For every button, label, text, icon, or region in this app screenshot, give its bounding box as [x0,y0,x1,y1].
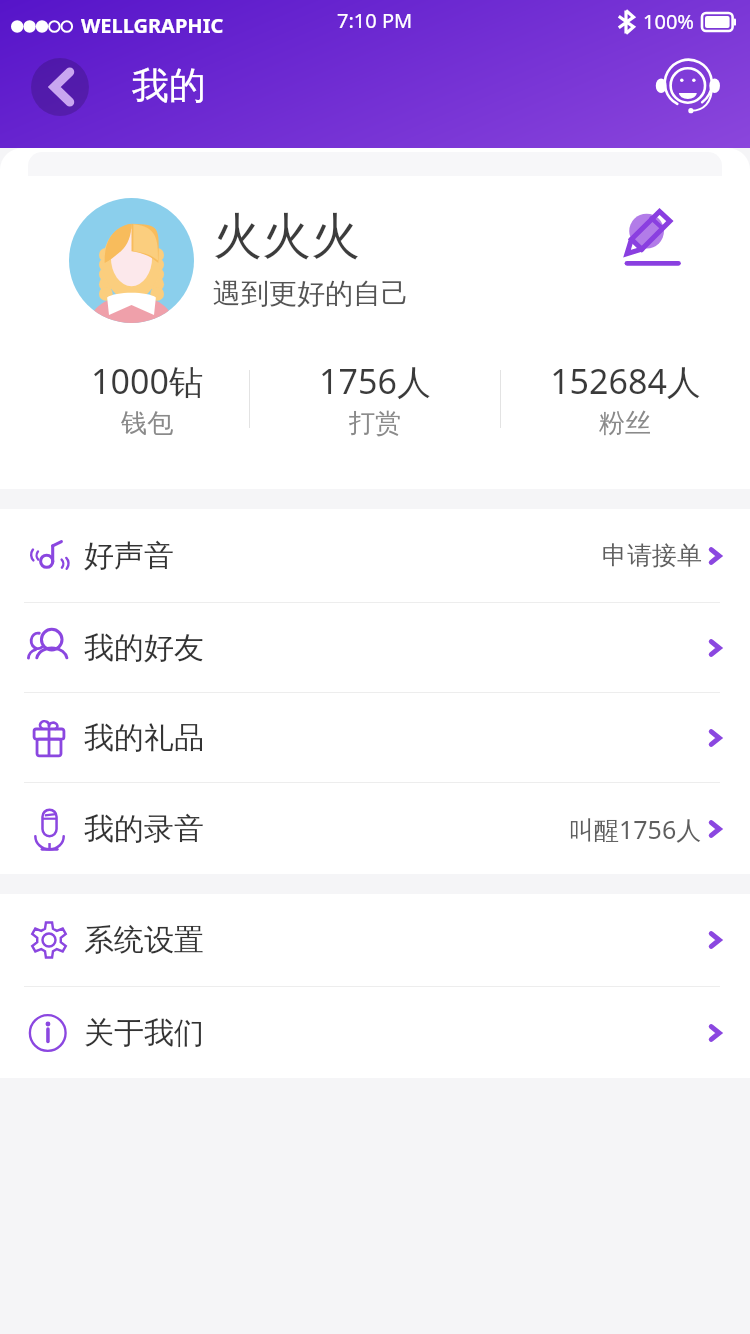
button[interactable]: Edit profile [617,200,691,274]
staticText: 打赏 [349,407,401,440]
staticText: WELLGRAPHIC [81,12,224,39]
button[interactable]: 系统设置 [0,894,750,986]
button[interactable]: 我的录音 [0,783,750,874]
button[interactable]: 好声音 [0,509,750,602]
staticText: 我的 [132,62,206,109]
staticText: 钱包 [121,407,173,440]
staticText: 叫醒1756人 [569,812,702,846]
button[interactable]: 1000钻 [46,358,247,440]
staticText: 好声音 [84,537,174,575]
staticText: 关于我们 [84,1014,204,1052]
staticText: 遇到更好的自己 [213,276,409,311]
button[interactable]: 1756人 [249,358,500,440]
staticText: 我的好友 [84,629,204,667]
button[interactable]: 我的好友 [0,603,750,692]
staticText: 火火火 [213,206,360,268]
button[interactable]: 关于我们 [0,987,750,1078]
staticText: 我的录音 [84,810,204,848]
button[interactable]: 我的礼品 [0,693,750,782]
staticText: 152684人 [550,358,701,404]
staticText: 1756人 [319,358,431,404]
staticText: 7:10 PM [337,7,413,34]
staticText: 系统设置 [84,921,204,959]
button[interactable]: 152684人 [500,358,750,440]
button[interactable]: Customer service [655,57,720,122]
button[interactable]: Back [31,58,89,116]
staticText: 粉丝 [599,407,651,440]
staticText: 1000钻 [91,358,203,404]
staticText: 申请接单 [602,540,702,571]
staticText: 我的礼品 [84,719,204,757]
staticText: 100% [643,8,694,35]
